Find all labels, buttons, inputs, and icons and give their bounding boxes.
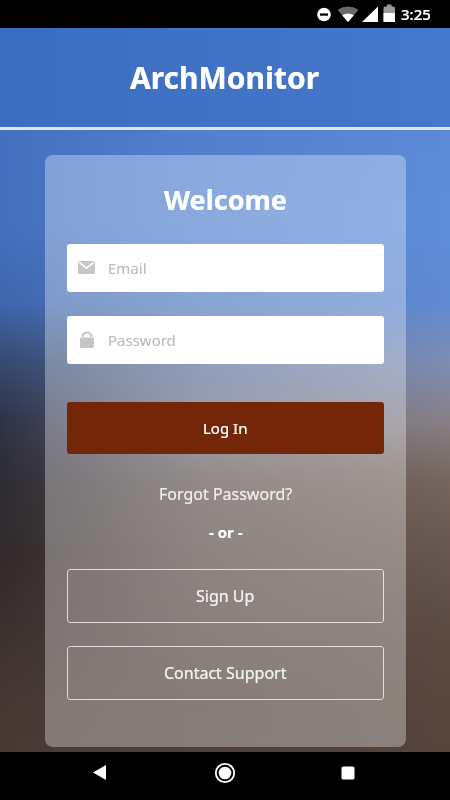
staticText: 3:25 bbox=[401, 4, 431, 24]
button[interactable]: Log In bbox=[67, 402, 384, 454]
staticText: Contact Support bbox=[164, 662, 287, 684]
staticText: Welcome bbox=[164, 181, 287, 218]
button[interactable]: Sign Up bbox=[67, 569, 384, 623]
staticText: Forgot Password? bbox=[159, 483, 293, 505]
button[interactable]: Email bbox=[67, 244, 384, 292]
staticText: Password bbox=[108, 330, 176, 350]
staticText: ArchMonitor bbox=[130, 57, 320, 98]
button[interactable]: Contact Support bbox=[67, 646, 384, 700]
button[interactable]: Forgot Password? bbox=[67, 474, 384, 514]
staticText: Log In bbox=[203, 418, 248, 438]
button[interactable] bbox=[84, 757, 116, 789]
button[interactable] bbox=[209, 757, 241, 789]
button[interactable]: Password bbox=[67, 316, 384, 364]
staticText: Email bbox=[108, 258, 147, 278]
staticText: Sign Up bbox=[196, 585, 255, 607]
staticText: - or - bbox=[209, 522, 243, 542]
button[interactable] bbox=[332, 757, 364, 789]
